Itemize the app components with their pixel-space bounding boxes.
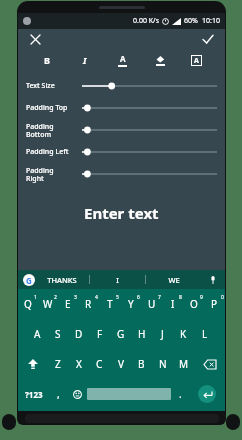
staticText: U (148, 297, 156, 311)
staticText: M (179, 357, 189, 371)
staticText: I (171, 297, 175, 311)
button[interactable]: R (78, 289, 99, 319)
button[interactable]: Italic (66, 49, 104, 71)
staticText: 3 (74, 294, 77, 301)
button[interactable]: Voice input (201, 270, 225, 289)
button[interactable]: E (58, 289, 78, 319)
staticText: E (65, 297, 71, 311)
staticText: T (107, 297, 113, 311)
staticText: A (194, 56, 199, 65)
staticText: O (190, 297, 198, 311)
button[interactable]: Padding Top (26, 97, 217, 119)
button[interactable]: Y (120, 289, 141, 319)
staticText: THANKS (47, 275, 77, 285)
button[interactable]: Text Size (26, 75, 217, 97)
staticText: 4 (95, 294, 98, 301)
staticText: 1 (34, 294, 37, 301)
button[interactable]: Close (26, 30, 44, 48)
button[interactable]: Text color (104, 49, 141, 71)
button[interactable]: ?123 (18, 379, 49, 409)
staticText: 9 (200, 294, 203, 301)
staticText: R (85, 297, 92, 311)
button[interactable]: D (68, 319, 89, 349)
staticText: I (116, 275, 119, 285)
staticText: . (179, 387, 182, 401)
button[interactable]: Z (48, 349, 68, 379)
staticText: K (180, 327, 187, 341)
button[interactable]: I (90, 270, 145, 289)
staticText: Z (55, 357, 61, 371)
button[interactable]: Fill color (141, 49, 178, 71)
button[interactable]: N (152, 349, 173, 379)
button[interactable]: I (162, 289, 183, 319)
staticText: G (26, 275, 32, 286)
button[interactable]: H (131, 319, 152, 349)
button[interactable]: K (173, 319, 194, 349)
staticText: F (97, 327, 103, 341)
staticText: P (211, 297, 218, 311)
button[interactable]: THANKS (35, 270, 89, 289)
staticText: Padding Right (26, 166, 82, 183)
staticText: , (57, 387, 60, 401)
button[interactable]: L (194, 319, 215, 349)
staticText: D (75, 327, 83, 341)
staticText: Padding Left (26, 147, 82, 157)
button[interactable]: B (131, 349, 152, 379)
button[interactable]: S (47, 319, 68, 349)
button[interactable]: Done (199, 30, 217, 48)
staticText: Enter text (84, 203, 159, 223)
staticText: 8 (179, 294, 182, 301)
button[interactable]: U (141, 289, 162, 319)
button[interactable]: G (110, 319, 131, 349)
staticText: S (55, 327, 61, 341)
button[interactable]: M (173, 349, 194, 379)
staticText: X (76, 357, 82, 371)
button[interactable]: Bold (28, 49, 66, 71)
staticText: L (202, 327, 208, 341)
button[interactable]: F (89, 319, 110, 349)
staticText: Padding Bottom (26, 122, 82, 139)
button[interactable]: . (171, 379, 189, 409)
button[interactable]: W (38, 289, 58, 319)
button[interactable]: Padding Bottom (26, 119, 217, 141)
staticText: N (159, 357, 167, 371)
staticText: J (161, 327, 164, 341)
staticText: B (138, 357, 145, 371)
button[interactable]: Q (18, 289, 38, 319)
staticText: I (83, 54, 87, 66)
button[interactable]: Text background (178, 49, 215, 71)
staticText: 5 (116, 294, 119, 301)
staticText: ?123 (25, 389, 43, 400)
staticText: Padding Top (26, 103, 82, 113)
button[interactable]: Enter (198, 385, 216, 403)
staticText: WE (168, 275, 180, 285)
button[interactable]: A (27, 319, 47, 349)
staticText: 10:10 (202, 16, 220, 26)
button[interactable]: C (89, 349, 110, 379)
button[interactable]: WE (146, 270, 201, 289)
button[interactable]: Emoji (67, 379, 87, 409)
staticText: A (34, 327, 41, 341)
button[interactable]: Padding Right (26, 163, 217, 185)
button[interactable]: O (183, 289, 204, 319)
button[interactable]: X (68, 349, 89, 379)
button[interactable]: Shift (18, 349, 48, 379)
button[interactable]: P (204, 289, 225, 319)
button[interactable]: J (152, 319, 173, 349)
button[interactable]: Backspace (194, 349, 225, 379)
staticText: 7 (158, 294, 161, 301)
button[interactable]: Padding Left (26, 141, 217, 163)
staticText: H (138, 327, 146, 341)
staticText: 60% (184, 16, 198, 26)
staticText: 6 (137, 294, 140, 301)
staticText: B (44, 54, 50, 66)
button[interactable]: Google (23, 274, 35, 286)
staticText: Text Size (26, 81, 82, 91)
button[interactable]: V (110, 349, 131, 379)
button[interactable]: , (49, 379, 67, 409)
staticText: A (120, 53, 126, 64)
staticText: W (43, 297, 53, 311)
staticText: 0.00 K/s (133, 16, 159, 26)
button[interactable]: T (99, 289, 120, 319)
